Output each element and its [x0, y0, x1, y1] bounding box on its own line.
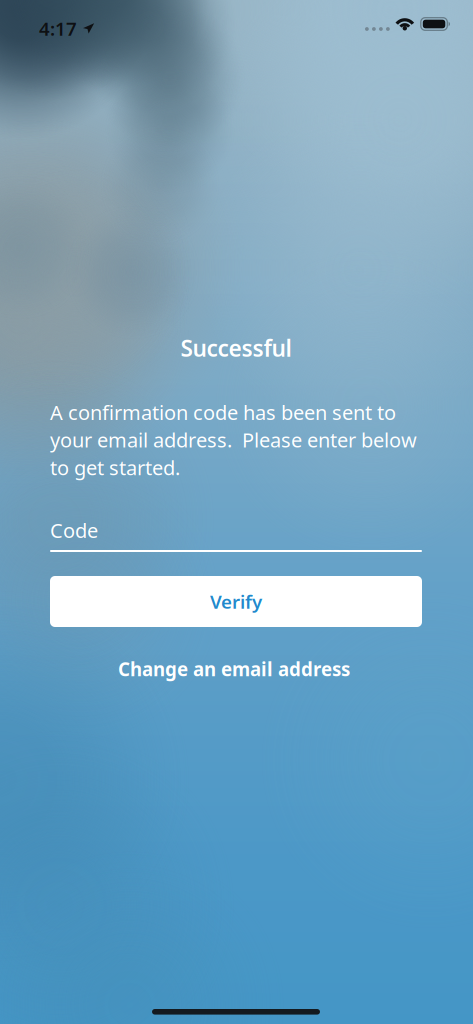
staticText: Code [50, 517, 98, 544]
staticText: A confirmation code has been sent to you… [50, 399, 417, 481]
staticText: 4:17 [39, 16, 77, 41]
staticText: Verify [210, 589, 262, 614]
staticText: Successful [180, 333, 291, 363]
button[interactable]: Change an email address [48, 653, 420, 685]
button[interactable]: Verify [50, 576, 422, 627]
staticText: Change an email address [118, 657, 350, 681]
